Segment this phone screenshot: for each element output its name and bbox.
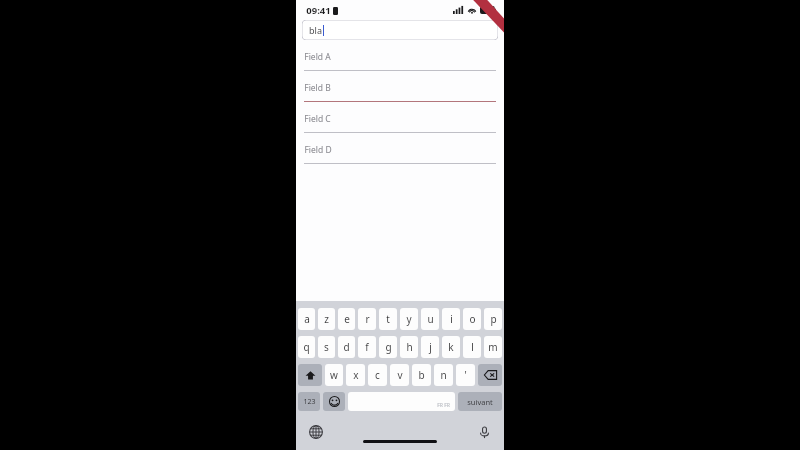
button[interactable]: m [484,336,502,358]
button[interactable]: suivant [458,392,502,411]
staticText: q [303,340,310,354]
staticText: n [440,368,447,382]
button[interactable]: y [400,308,418,330]
staticText: o [469,312,476,326]
staticText: i [450,312,453,326]
button[interactable]: f [358,336,376,358]
button[interactable]: z [318,308,335,330]
button[interactable]: v [390,364,409,386]
staticText: s [324,340,329,354]
staticText: v [397,368,403,382]
staticText: z [324,312,329,326]
button[interactable]: e [338,308,355,330]
button[interactable]: w [325,364,343,386]
staticText: f [365,340,369,354]
button[interactable]: g [379,336,397,358]
staticText: w [330,368,338,382]
button[interactable]: j [421,336,439,358]
staticText: c [375,368,380,382]
button[interactable]: Key [298,364,322,386]
button[interactable]: s [318,336,335,358]
staticText: x [353,368,359,382]
button[interactable]: Field B [304,75,496,106]
button[interactable]: Field A [304,44,496,75]
button[interactable]: l [463,336,481,358]
button[interactable]: k [442,336,460,358]
button[interactable]: Field C [304,106,496,137]
button[interactable]: Dictate [474,422,494,442]
button[interactable]: p [484,308,502,330]
staticText: j [429,340,432,354]
staticText: Field C [304,113,331,125]
button[interactable]: Emoji [323,392,345,411]
staticText: p [490,312,497,326]
button[interactable]: q [298,336,315,358]
staticText: g [385,340,392,354]
button[interactable]: Field D [304,137,496,168]
button[interactable]: Key [478,364,502,386]
button[interactable]: i [442,308,460,330]
staticText: m [488,340,498,354]
staticText: b [418,368,425,382]
staticText: y [406,312,412,326]
staticText: ' [464,368,467,382]
button[interactable]: n [434,364,453,386]
button[interactable]: o [463,308,481,330]
button[interactable]: d [338,336,355,358]
staticText: e [344,312,350,326]
button[interactable]: h [400,336,418,358]
staticText: bla [309,24,322,36]
staticText: Field A [304,51,331,63]
button[interactable]: Change keyboard [306,422,326,442]
staticText: l [471,340,474,354]
staticText: suivant [467,397,493,407]
button[interactable]: b [412,364,431,386]
button[interactable]: a [298,308,315,330]
staticText: Field D [304,144,332,156]
staticText: k [448,340,454,354]
button[interactable]: ' [456,364,475,386]
staticText: t [386,312,390,326]
staticText: 123 [303,397,316,407]
button[interactable]: r [358,308,376,330]
staticText: a [304,312,310,326]
staticText: FR FR [437,402,450,409]
staticText: u [427,312,434,326]
staticText: d [343,340,350,354]
staticText: 09:41 [306,4,331,17]
button[interactable]: Space [348,392,455,411]
button[interactable]: c [368,364,387,386]
button[interactable]: 123 [298,392,320,411]
button[interactable]: t [379,308,397,330]
button[interactable]: u [421,308,439,330]
button[interactable]: x [346,364,365,386]
staticText: Field B [304,82,331,94]
staticText: h [406,340,413,354]
button[interactable]: bla [302,20,498,40]
staticText: r [365,312,370,326]
